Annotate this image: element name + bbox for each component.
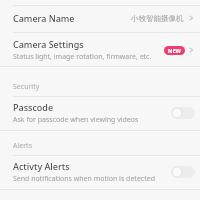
staticText: Activty Alerts (13, 160, 70, 172)
staticText: 小牧智能摄像机 (131, 14, 184, 23)
button[interactable]: Activty Alerts (0, 156, 200, 189)
staticText: Camera Name (13, 12, 75, 24)
staticText: NEW (168, 47, 181, 54)
staticText: Camera Settings (13, 38, 84, 50)
other: Toggle off (171, 166, 195, 178)
staticText: Security (13, 82, 40, 92)
staticText: Send notifications when motion is detect… (13, 174, 155, 184)
staticText: Status light, image rotation, firmware, … (13, 52, 152, 62)
staticText: Alerts (13, 141, 32, 151)
button[interactable]: Camera Name (0, 6, 200, 32)
staticText: Passcode (13, 101, 54, 113)
staticText: Ask for passcode when viewing videos (13, 115, 139, 125)
other: Toggle off (171, 107, 195, 119)
button[interactable]: Camera Settings (0, 33, 200, 66)
button[interactable]: Passcode (0, 97, 200, 130)
